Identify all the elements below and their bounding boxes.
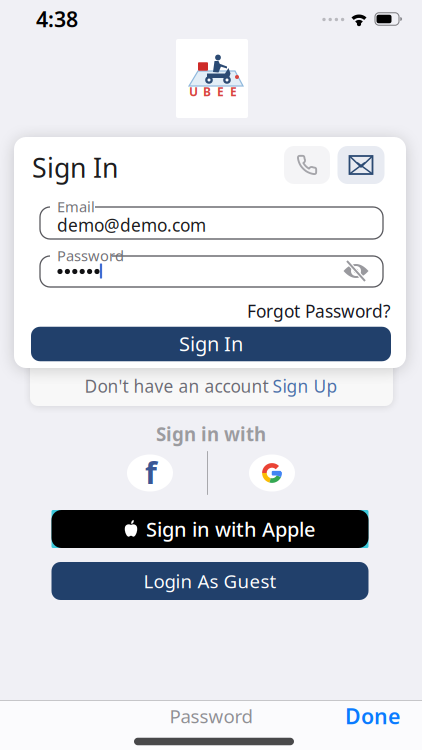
button[interactable]: Sign in with Facebook	[0, 0, 422, 750]
button[interactable]: Done	[0, 0, 422, 750]
button[interactable]: Sign in with phone	[0, 0, 422, 750]
staticText: Done	[345, 702, 400, 730]
staticText: E	[217, 83, 224, 99]
staticText: B	[203, 83, 211, 99]
staticText: Sign In	[32, 150, 118, 185]
staticText: Sign in with	[156, 422, 266, 446]
staticText: Forgot Password?	[247, 299, 391, 322]
staticText: Email	[57, 197, 95, 216]
staticText: U	[189, 83, 198, 99]
button[interactable]: Login As Guest	[0, 0, 422, 750]
button[interactable]: Password	[0, 0, 422, 750]
button[interactable]: Sign in with Google	[0, 0, 422, 750]
staticText: Login As Guest	[143, 569, 276, 593]
staticText: Sign in with Apple	[146, 516, 315, 542]
button[interactable]: Sign in with email	[0, 0, 422, 750]
staticText: Password	[57, 246, 124, 265]
button[interactable]: Show password	[0, 0, 422, 750]
button[interactable]: Sign In	[0, 0, 422, 750]
staticText: f	[145, 452, 157, 492]
staticText: Sign In	[179, 330, 243, 357]
staticText: 4:38	[36, 5, 78, 33]
staticText: Password	[169, 704, 252, 728]
button[interactable]: Forgot Password?	[0, 0, 422, 750]
staticText: Sign Up	[272, 374, 337, 397]
staticText: demo@demo.com	[57, 213, 206, 236]
staticText: Don't have an account	[84, 374, 268, 397]
button[interactable]: Don't have an account	[0, 0, 422, 750]
button[interactable]: Sign in with Apple	[0, 0, 422, 750]
staticText: E	[230, 83, 237, 99]
